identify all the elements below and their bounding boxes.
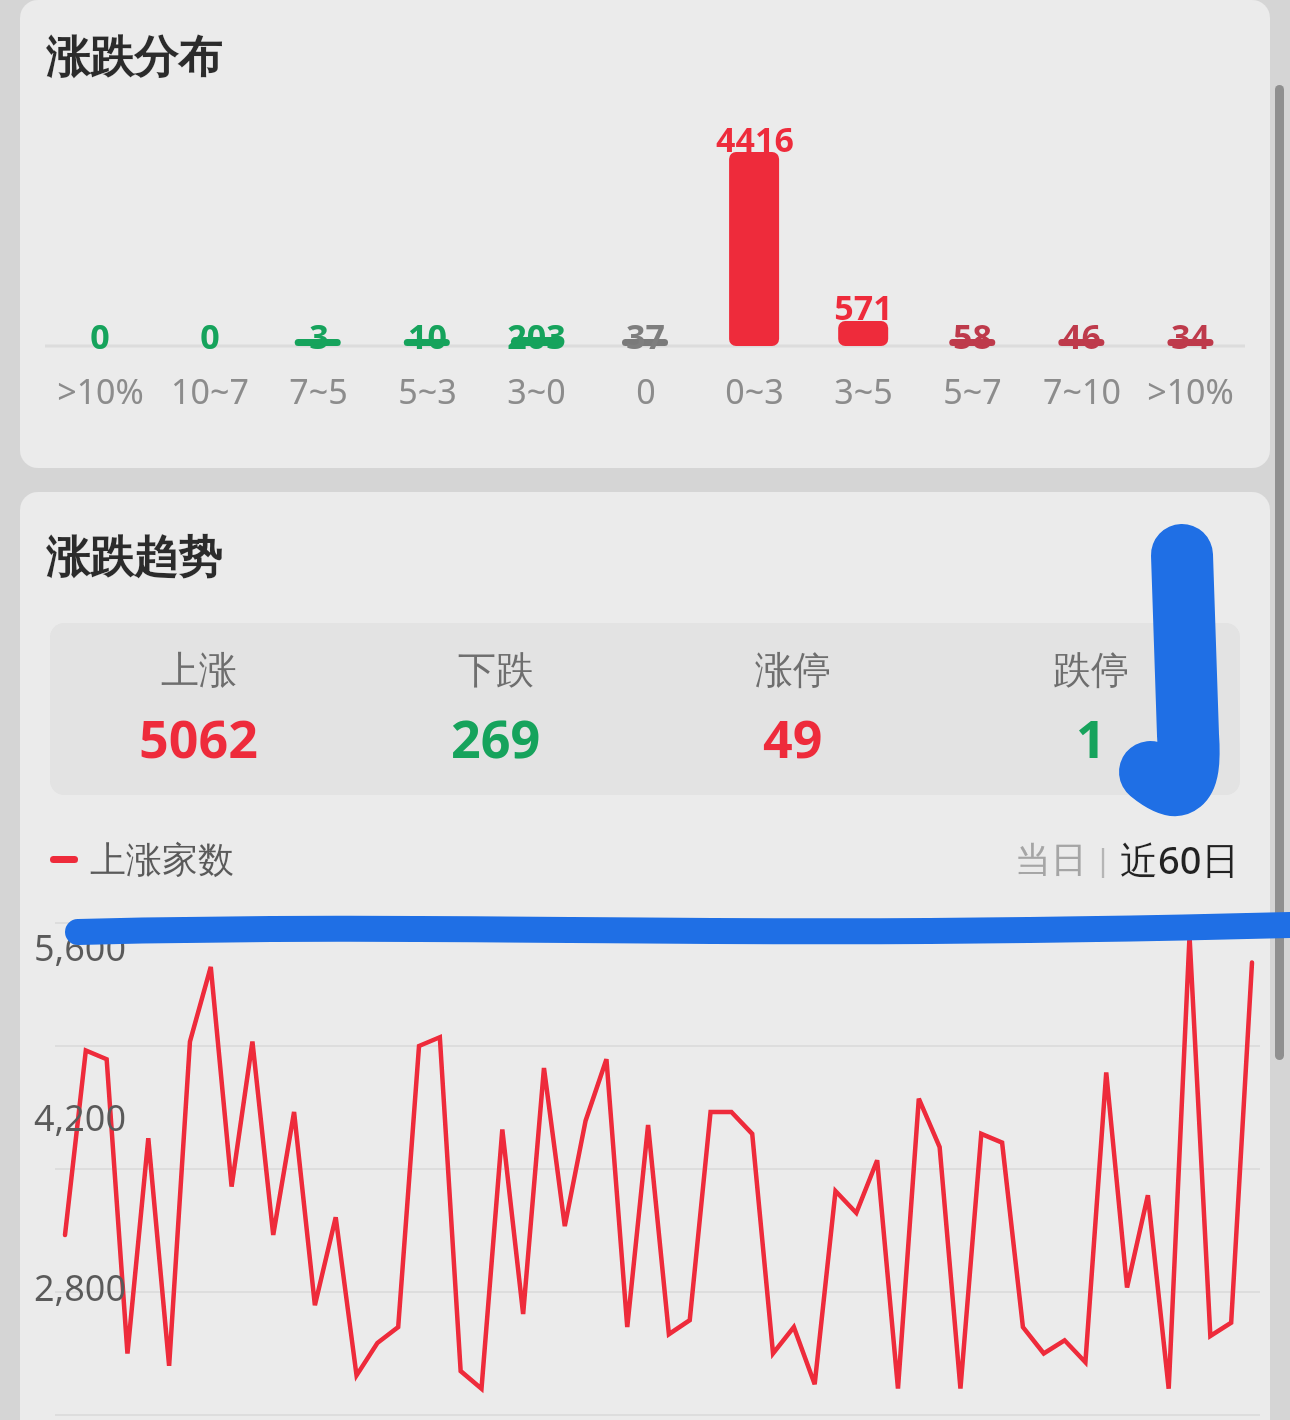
staticText: 涨跌分布 — [46, 30, 222, 85]
staticText: 571 — [834, 284, 893, 330]
staticText: 上涨 — [161, 646, 237, 694]
staticText: 下跌 — [458, 646, 534, 694]
button[interactable]: 当日 — [1015, 837, 1087, 882]
staticText: 7~5 — [289, 368, 348, 414]
staticText: 49 — [763, 702, 823, 773]
button[interactable]: 4416 — [700, 0, 809, 468]
staticText: >10% — [57, 368, 144, 414]
staticText: 5062 — [139, 702, 258, 773]
button[interactable]: 上涨 — [50, 623, 347, 795]
staticText: 1 — [1076, 702, 1106, 773]
staticText: 0 — [90, 313, 110, 359]
staticText: 跌停 — [1053, 646, 1129, 694]
button[interactable]: 跌停 — [942, 623, 1240, 795]
staticText: 涨跌趋势 — [46, 530, 222, 585]
staticText: 5~7 — [943, 368, 1002, 414]
staticText: | — [1087, 839, 1120, 880]
staticText: >10% — [1147, 368, 1234, 414]
other: Annotation arrow — [0, 0, 1290, 1420]
staticText: 4416 — [716, 116, 794, 162]
button[interactable]: 571 — [809, 0, 918, 468]
staticText: 0 — [636, 368, 656, 414]
staticText: 涨停 — [755, 646, 831, 694]
button[interactable]: 0 — [155, 0, 264, 468]
staticText: 58 — [953, 313, 992, 359]
staticText: 5,600 — [34, 923, 127, 972]
button[interactable]: 涨停 — [644, 623, 942, 795]
staticText: 0 — [200, 313, 220, 359]
button[interactable]: 34 — [1136, 0, 1245, 468]
staticText: 3~5 — [834, 368, 893, 414]
staticText: 3~0 — [507, 368, 566, 414]
button[interactable]: 58 — [918, 0, 1027, 468]
staticText: 203 — [507, 313, 566, 359]
staticText: 0~3 — [725, 368, 784, 414]
staticText: 46 — [1062, 313, 1101, 359]
staticText: 2,800 — [34, 1263, 127, 1312]
staticText: 5~3 — [398, 368, 457, 414]
staticText: 4,200 — [34, 1093, 127, 1142]
staticText: 34 — [1171, 313, 1210, 359]
staticText: 37 — [626, 313, 665, 359]
button[interactable]: 203 — [482, 0, 591, 468]
button[interactable]: 下跌 — [347, 623, 644, 795]
staticText: 当日 — [1015, 837, 1087, 882]
staticText: 269 — [451, 702, 541, 773]
staticText: 3 — [309, 313, 329, 359]
staticText: 10~7 — [171, 368, 249, 414]
button[interactable]: 上涨家数 — [50, 837, 234, 882]
button[interactable]: 10 — [373, 0, 482, 468]
staticText: 10 — [408, 313, 447, 359]
button[interactable]: 0 — [45, 0, 155, 468]
staticText: 上涨家数 — [90, 837, 234, 882]
button[interactable]: 近60日 — [1120, 833, 1240, 885]
button[interactable]: 37 — [591, 0, 700, 468]
button[interactable]: 3 — [264, 0, 373, 468]
staticText: 近60日 — [1120, 833, 1240, 885]
staticText: 7~10 — [1043, 368, 1121, 414]
button[interactable]: 46 — [1027, 0, 1136, 468]
